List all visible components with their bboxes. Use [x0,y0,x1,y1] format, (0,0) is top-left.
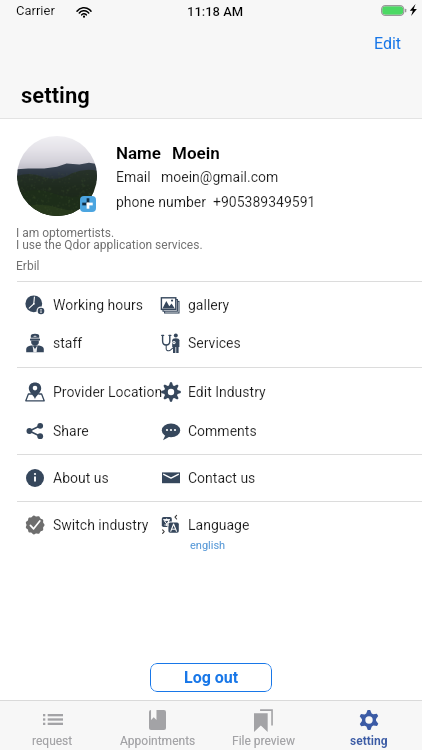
staticText: Email [116,169,151,185]
staticText: Language [188,517,250,533]
staticText: Switch industry [53,517,149,533]
staticText: setting [21,83,90,109]
staticText: gallery [188,297,230,313]
staticText: About us [53,470,109,486]
staticText: Contact us [188,470,256,486]
staticText: Working hours [53,297,143,313]
button[interactable]: Log out [150,663,272,692]
staticText: 11:18 AM [187,4,244,19]
button[interactable]: Change photo [80,196,96,212]
button[interactable]: Provider Location [17,373,155,411]
staticText: Provider Location [53,384,163,400]
staticText: I am optomertists. [16,226,115,240]
button[interactable]: gallery [155,286,330,324]
staticText: moein@gmail.com [161,169,279,185]
staticText: Services [188,335,241,351]
staticText: phone number [116,194,206,210]
staticText: staff [53,335,83,351]
staticText: Appointments [120,734,196,748]
button[interactable]: Edit Industry [155,373,330,411]
button[interactable]: setting [316,701,422,750]
staticText: Carrier [16,3,55,18]
staticText: Edit [374,34,402,53]
button[interactable]: Edit [368,31,408,56]
button[interactable]: Working hours [17,286,155,324]
staticText: request [32,734,73,748]
staticText: Name [116,143,161,163]
staticText: Moein [172,143,220,163]
button[interactable]: Comments [155,412,330,450]
button[interactable]: Contact us [155,459,330,497]
button[interactable]: Switch industry [17,506,155,544]
button[interactable]: Share [17,412,155,450]
staticText: I use the Qdor application services. [16,238,203,252]
staticText: english [190,539,226,552]
button[interactable]: File preview [210,701,316,750]
staticText: Edit Industry [188,384,266,400]
staticText: Log out [184,668,239,687]
staticText: +905389349591 [213,194,316,210]
staticText: Comments [188,423,257,439]
button[interactable]: staff [17,324,155,362]
staticText: File preview [232,734,295,748]
staticText: setting [350,734,388,748]
staticText: Erbil [16,259,40,273]
button[interactable]: Language [155,506,330,558]
staticText: Share [53,423,89,439]
button[interactable]: Services [155,324,330,362]
button[interactable]: request [0,701,105,750]
button[interactable]: Appointments [105,701,210,750]
button[interactable]: About us [17,459,155,497]
